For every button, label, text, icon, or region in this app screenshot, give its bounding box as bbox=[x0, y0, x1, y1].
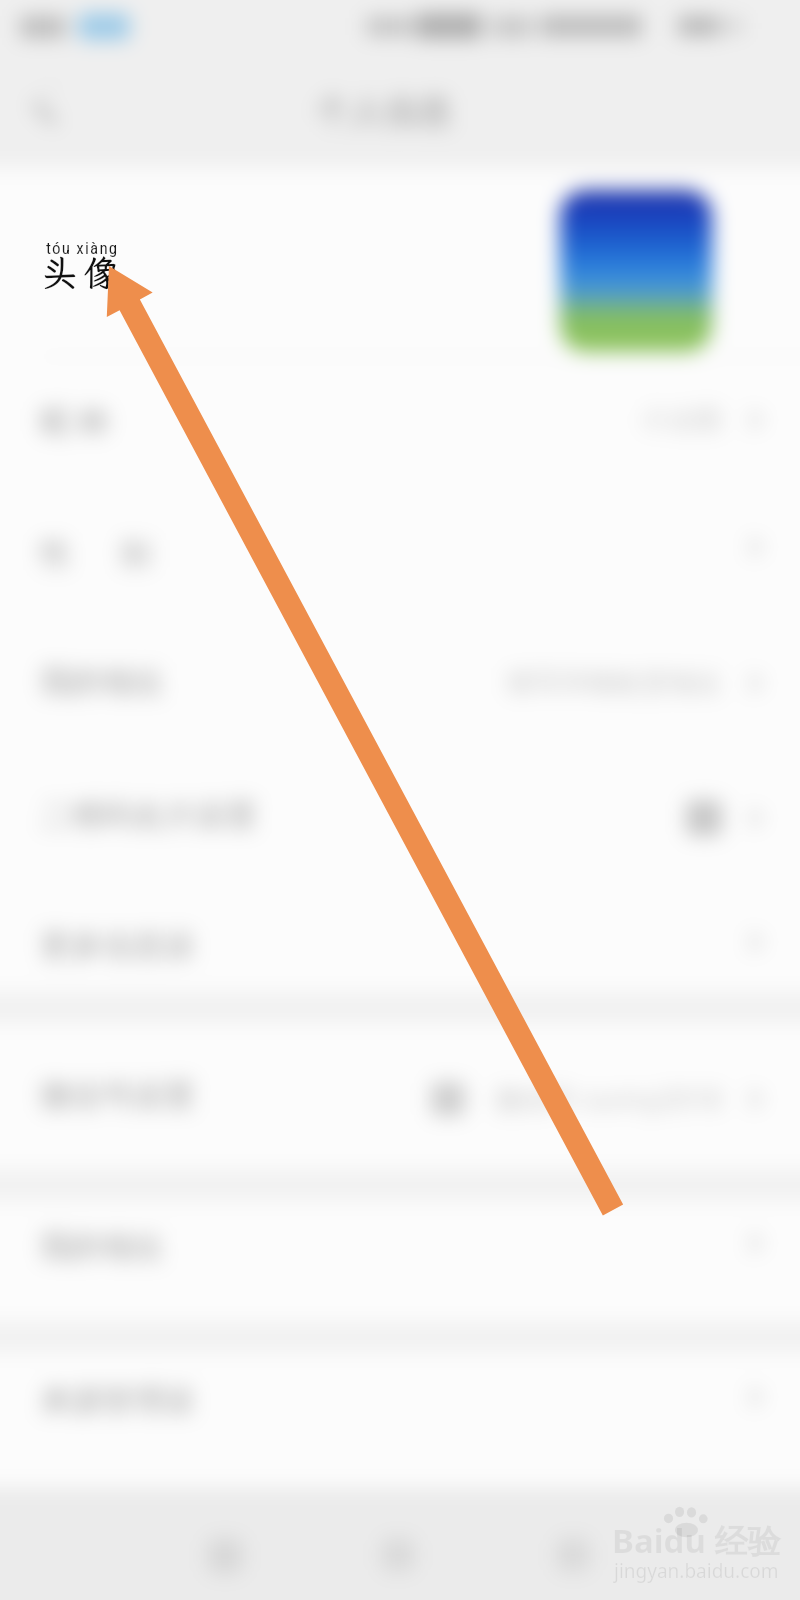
staticText: tóu xiàng bbox=[46, 238, 119, 258]
staticText: 微信号 sunny2018 bbox=[495, 1080, 722, 1117]
button[interactable]: 我的地址 bbox=[0, 1200, 800, 1322]
button[interactable]: 更多信息设 bbox=[0, 884, 800, 992]
button[interactable]: 微信号设置 bbox=[0, 1024, 800, 1170]
staticText: 二维码名片设置 bbox=[40, 796, 257, 835]
staticText: 个人信息 bbox=[316, 90, 452, 133]
staticText: Baidu 经验 bbox=[612, 1518, 781, 1563]
button[interactable]: 性 别 bbox=[0, 489, 800, 620]
staticText: 我的地址 bbox=[40, 1227, 164, 1266]
staticText: 头 像 bbox=[42, 249, 117, 296]
staticText: 更多信息设 bbox=[40, 926, 195, 965]
staticText: jingyan.baidu.com bbox=[614, 1558, 779, 1584]
staticText: 微信号设置 bbox=[40, 1076, 195, 1115]
staticText: 来源管理设 bbox=[40, 1381, 195, 1420]
other: Back bbox=[16, 76, 72, 132]
button[interactable]: 昵 称 bbox=[0, 357, 800, 489]
staticText: 我的地址 bbox=[40, 662, 164, 701]
staticText: 性 别 bbox=[40, 531, 151, 573]
button[interactable]: 来源管理设 bbox=[0, 1352, 800, 1487]
button[interactable]: 二维码名片设置 bbox=[0, 752, 800, 884]
staticText: 昵 称 bbox=[40, 399, 111, 441]
button[interactable]: 我的地址 bbox=[0, 620, 800, 752]
